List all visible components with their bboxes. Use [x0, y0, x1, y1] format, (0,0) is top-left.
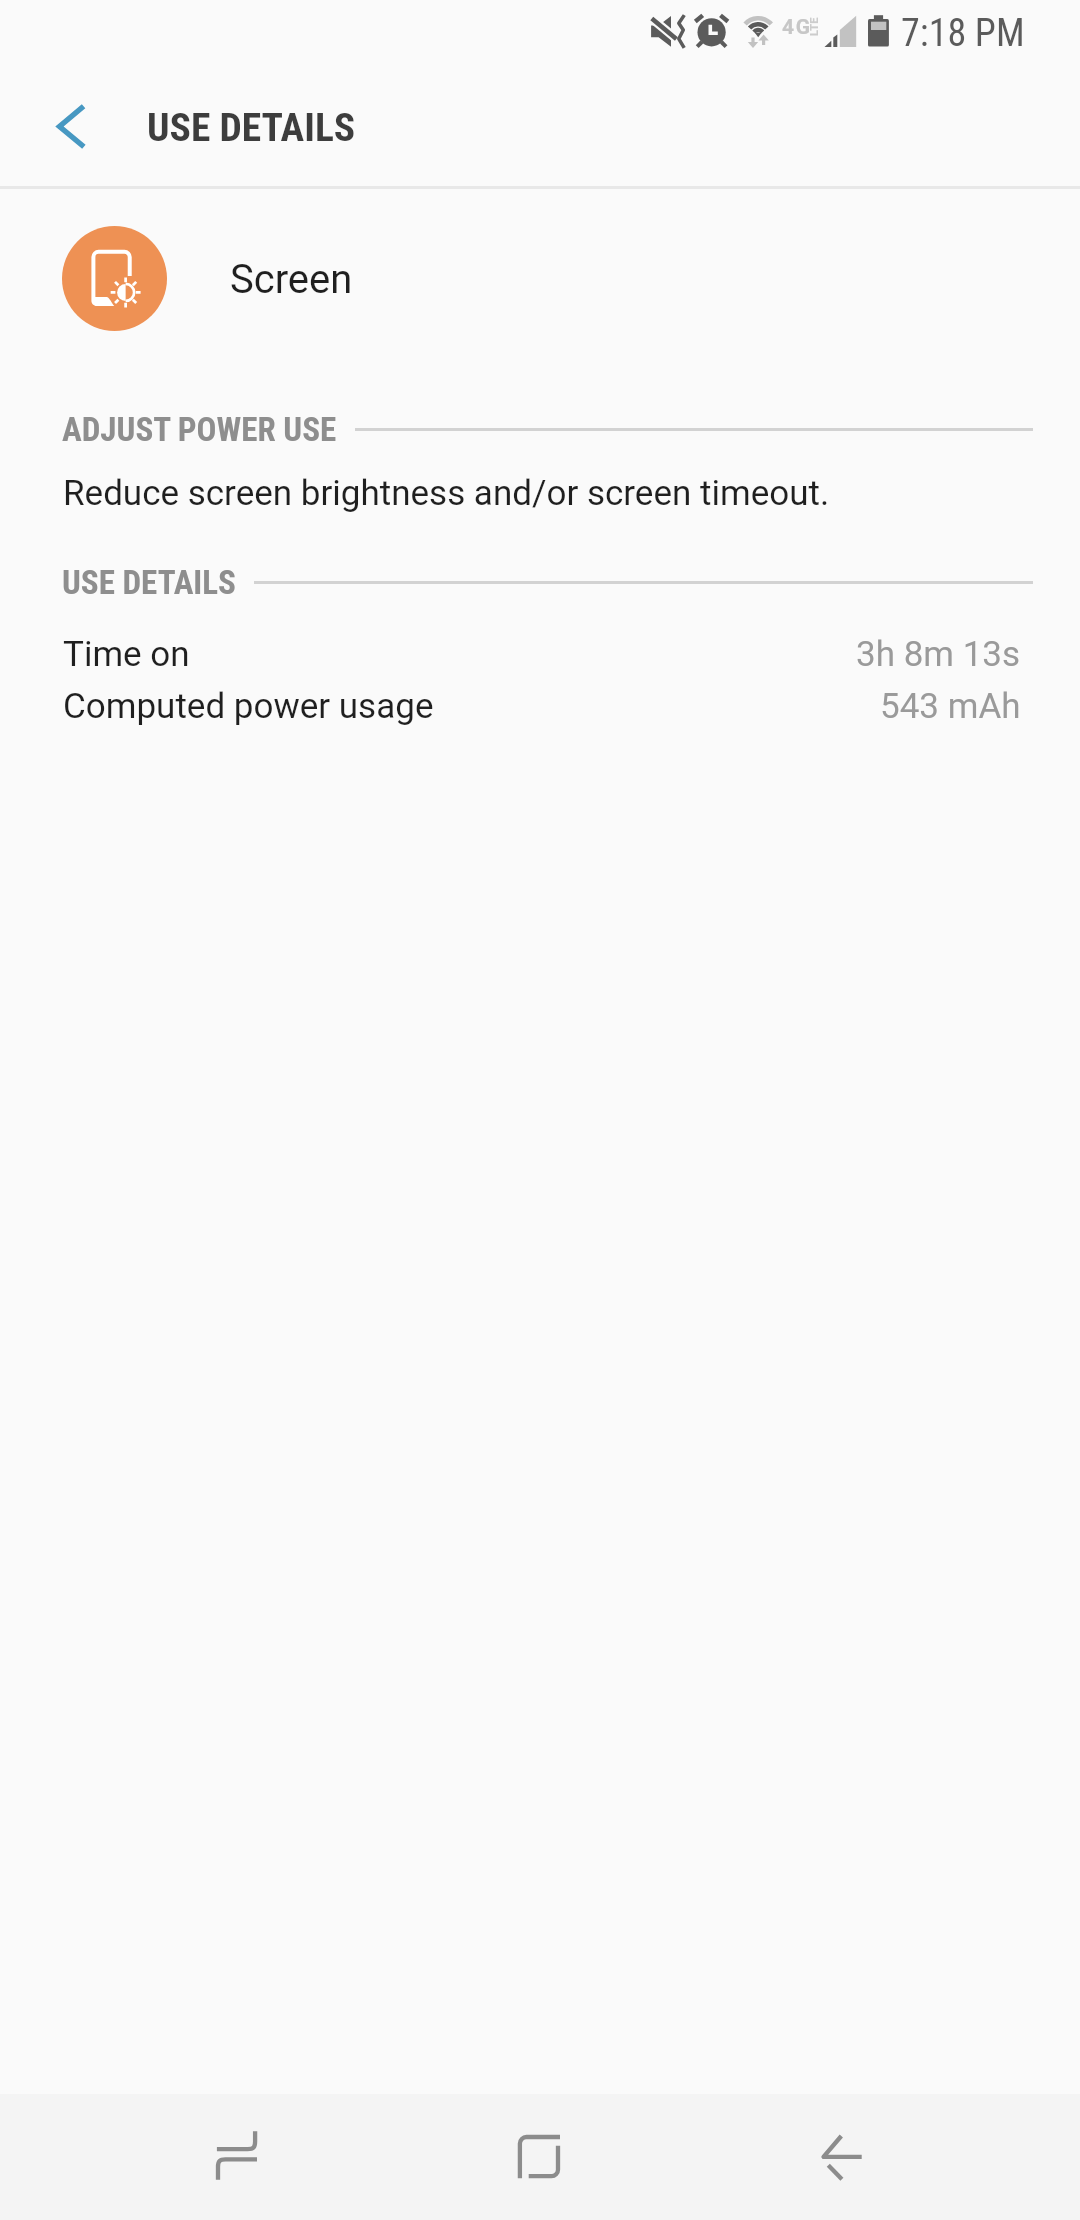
- staticText: Screen: [230, 256, 353, 303]
- staticText: 7:18 PM: [901, 11, 1025, 56]
- button[interactable]: Home: [360, 2094, 720, 2220]
- button[interactable]: Back: [720, 2094, 1080, 2220]
- staticText: Reduce screen brightness and/or screen t…: [63, 473, 830, 514]
- staticText: 3h 8m 13s: [856, 634, 1021, 675]
- staticText: ADJUST POWER USE: [62, 410, 337, 449]
- staticText: LTE: [808, 17, 821, 36]
- button[interactable]: Navigate up: [16, 68, 118, 170]
- staticText: Time on: [63, 634, 190, 675]
- staticText: Computed power usage: [63, 686, 434, 727]
- button[interactable]: Recents: [0, 2094, 360, 2220]
- staticText: 4G: [782, 15, 812, 40]
- button[interactable]: Screen: [0, 189, 1080, 345]
- staticText: USE DETAILS: [147, 104, 356, 150]
- staticText: 543 mAh: [880, 686, 1021, 727]
- staticText: USE DETAILS: [62, 563, 236, 602]
